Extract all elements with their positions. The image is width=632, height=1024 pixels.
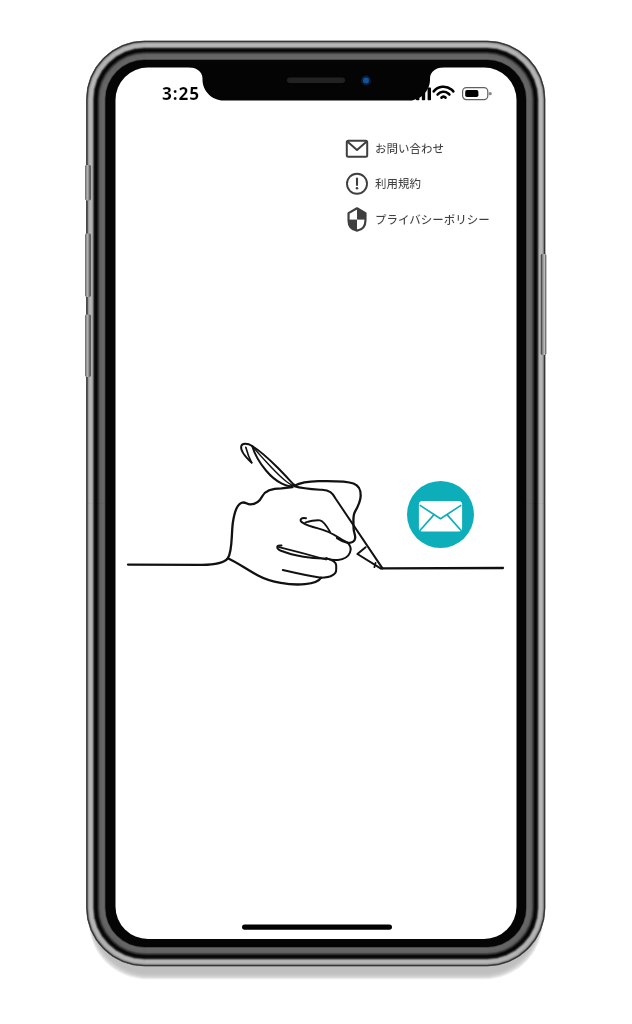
staticText: プライバシーポリシー	[375, 211, 490, 228]
button[interactable]: 利用規約	[346, 172, 421, 194]
staticText: 3:25	[162, 82, 200, 105]
staticText: お問い合わせ	[375, 140, 444, 157]
button[interactable]: お問い合わせ	[346, 137, 444, 159]
button[interactable]: プライバシーポリシー	[346, 207, 490, 231]
staticText: 利用規約	[375, 175, 421, 192]
button[interactable]: Compose mail	[407, 481, 474, 548]
